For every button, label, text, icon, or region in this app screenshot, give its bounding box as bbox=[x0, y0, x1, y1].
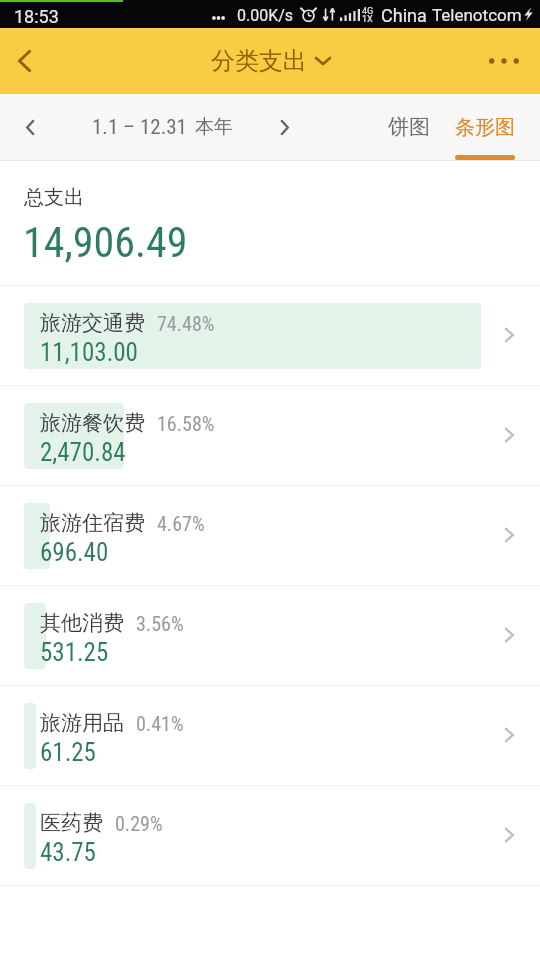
staticText: 本年 bbox=[195, 115, 233, 139]
button[interactable]: 医药费 bbox=[0, 785, 540, 885]
staticText: 旅游交通费 bbox=[40, 310, 145, 336]
staticText: China bbox=[381, 5, 427, 26]
staticText: 其他消费 bbox=[40, 610, 124, 636]
staticText: 条形图 bbox=[455, 115, 515, 140]
button[interactable]: 其他消费 bbox=[0, 585, 540, 685]
button[interactable]: Previous period bbox=[10, 94, 50, 160]
button[interactable]: More options bbox=[476, 28, 532, 94]
staticText: 1X bbox=[362, 14, 373, 25]
staticText: 0.41% bbox=[136, 712, 184, 735]
button[interactable]: 旅游用品 bbox=[0, 685, 540, 785]
staticText: 43.75 bbox=[40, 838, 96, 867]
staticText: 3.56% bbox=[136, 612, 184, 635]
staticText: 分类支出 bbox=[211, 46, 307, 76]
button[interactable]: 饼图 bbox=[376, 94, 442, 160]
button[interactable]: Next period bbox=[264, 94, 304, 160]
staticText: 61.25 bbox=[40, 738, 96, 767]
button[interactable]: 分类支出 bbox=[211, 46, 330, 76]
staticText: 0.29% bbox=[115, 812, 163, 835]
staticText: 16.58% bbox=[157, 412, 215, 435]
staticText: 旅游用品 bbox=[40, 710, 124, 736]
staticText: 总支出 bbox=[24, 185, 84, 210]
staticText: 旅游住宿费 bbox=[40, 510, 145, 536]
staticText: 14,906.49 bbox=[23, 218, 188, 267]
button[interactable]: 旅游住宿费 bbox=[0, 485, 540, 585]
button[interactable]: 旅游交通费 bbox=[0, 285, 540, 385]
staticText: 医药费 bbox=[40, 810, 103, 836]
staticText: 饼图 bbox=[388, 114, 430, 140]
staticText: 18:53 bbox=[14, 6, 59, 27]
staticText: 1.1 – 12.31 bbox=[92, 115, 187, 140]
button[interactable]: 旅游餐饮费 bbox=[0, 385, 540, 485]
button[interactable]: 条形图 bbox=[445, 94, 525, 160]
staticText: 旅游餐饮费 bbox=[40, 410, 145, 436]
staticText: 2,470.84 bbox=[40, 438, 126, 467]
staticText: Telenotcom bbox=[432, 5, 522, 25]
staticText: 4G bbox=[362, 6, 374, 17]
staticText: 74.48% bbox=[157, 312, 215, 335]
button[interactable]: Back bbox=[0, 28, 50, 94]
staticText: 531.25 bbox=[40, 638, 109, 667]
staticText: 4.67% bbox=[157, 512, 205, 535]
staticText: 11,103.00 bbox=[40, 338, 138, 367]
staticText: 696.40 bbox=[40, 538, 109, 567]
staticText: 0.00K/s bbox=[237, 6, 294, 25]
